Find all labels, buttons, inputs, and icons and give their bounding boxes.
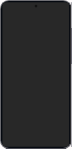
button[interactable]: Power: [70, 48, 72, 64]
button[interactable]: Clock: [2, 2, 69, 12]
button[interactable]: Home: [2, 138, 69, 146]
button[interactable]: Volume: [70, 28, 72, 48]
